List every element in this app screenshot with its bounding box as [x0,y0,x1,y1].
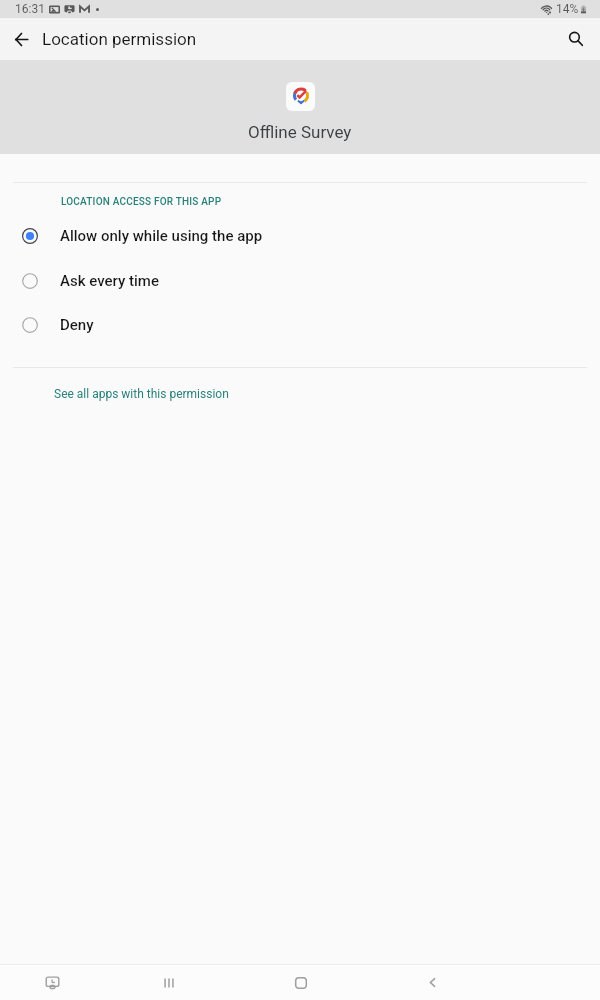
staticText: Allow only while using the app [60,227,263,245]
staticText: LOCATION ACCESS FOR THIS APP [61,196,222,208]
button[interactable]: Home [275,965,327,1000]
staticText: Offline Survey [248,122,352,142]
button[interactable]: Search [555,18,597,60]
button[interactable]: See all apps with this permission [0,368,600,420]
button[interactable]: Back [406,965,458,1000]
button[interactable]: Back [0,18,42,60]
staticText: Deny [60,316,94,334]
button[interactable]: Ask every time [0,258,600,303]
staticText: 16:31 [15,2,45,16]
button[interactable]: Screenshot [26,965,78,1000]
button[interactable]: Allow only while using the app [0,213,600,258]
staticText: 14% [556,2,579,16]
button[interactable]: Deny [0,302,600,347]
staticText: See all apps with this permission [54,387,229,401]
staticText: Ask every time [60,272,159,290]
button[interactable]: Recent apps [143,965,195,1000]
staticText: Location permission [42,29,197,49]
